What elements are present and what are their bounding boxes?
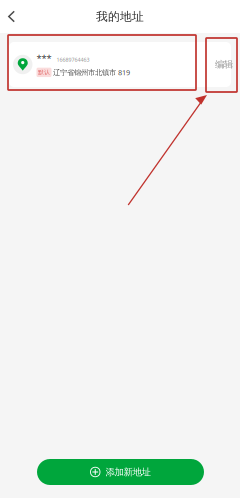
button[interactable]: Back <box>0 4 23 28</box>
staticText: 添加新地址 <box>105 466 150 478</box>
staticText: 16689764463 <box>56 56 89 63</box>
staticText: 默认 <box>38 69 50 76</box>
staticText: 辽宁省锦州市北镇市 819 <box>53 67 130 77</box>
button[interactable]: *** <box>9 42 231 87</box>
staticText: 编辑 <box>215 59 233 70</box>
staticText: *** <box>36 52 51 64</box>
staticText: 我的地址 <box>96 9 144 24</box>
button[interactable]: 添加新地址 <box>37 459 204 485</box>
